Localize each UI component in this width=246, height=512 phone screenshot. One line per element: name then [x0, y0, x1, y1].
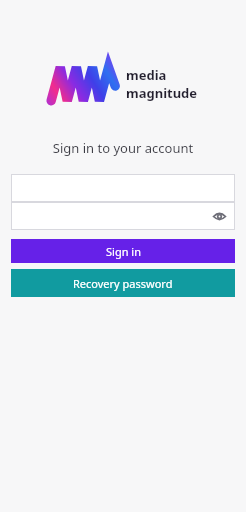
button[interactable]: Recovery password: [11, 269, 235, 297]
staticText: Recovery password: [73, 276, 173, 291]
staticText: magnitude: [126, 84, 198, 102]
staticText: media: [126, 66, 167, 84]
staticText: Sign in: [106, 244, 141, 259]
button[interactable]: Show password: [11, 202, 235, 230]
button[interactable]: Sign in: [11, 239, 235, 263]
button[interactable]: [11, 174, 235, 202]
button[interactable]: Show password: [209, 206, 229, 226]
staticText: Sign in to your account: [0, 139, 246, 157]
